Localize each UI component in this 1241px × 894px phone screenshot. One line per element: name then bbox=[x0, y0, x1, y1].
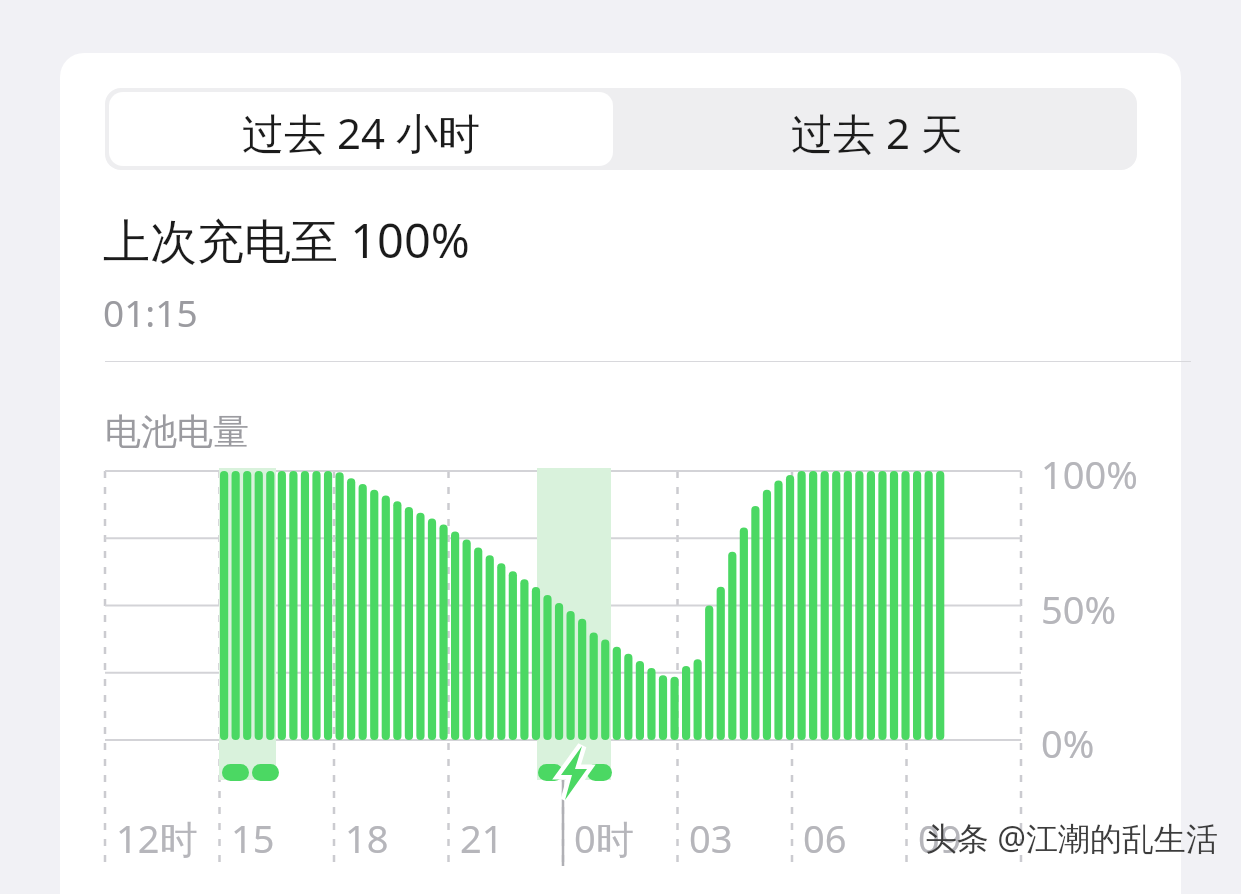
staticText: 09 bbox=[918, 812, 962, 864]
staticText: 头条 @江潮的乱生活 bbox=[925, 816, 1219, 860]
staticText: 过去 24 小时 bbox=[242, 104, 480, 161]
button[interactable]: 过去 24 小时 bbox=[109, 92, 613, 166]
staticText: 18 bbox=[345, 812, 389, 864]
staticText: 电池电量 bbox=[105, 409, 249, 454]
staticText: 21 bbox=[460, 812, 504, 864]
staticText: 0时 bbox=[574, 812, 634, 864]
staticText: 过去 2 天 bbox=[791, 104, 963, 161]
staticText: 06 bbox=[803, 812, 847, 864]
staticText: 100% bbox=[1041, 448, 1138, 500]
staticText: 01:15 bbox=[103, 287, 198, 337]
staticText: 12时 bbox=[116, 812, 198, 864]
staticText: 上次充电至 100% bbox=[103, 208, 470, 272]
button[interactable]: 过去 2 天 bbox=[621, 92, 1133, 166]
staticText: 03 bbox=[689, 812, 733, 864]
staticText: 50% bbox=[1041, 583, 1117, 635]
staticText: 0% bbox=[1041, 717, 1095, 769]
staticText: 15 bbox=[231, 812, 275, 864]
